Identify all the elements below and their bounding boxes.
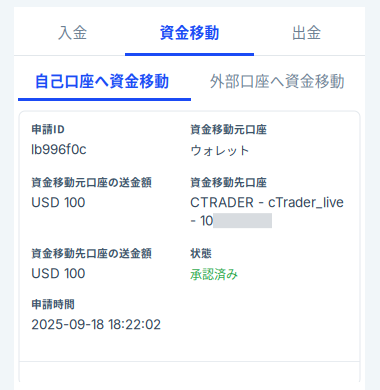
button[interactable]: 自己口座へ資金移動 bbox=[14, 56, 189, 101]
staticText: 自己口座へ資金移動 bbox=[34, 69, 169, 91]
button[interactable]: 資金移動 bbox=[131, 7, 248, 56]
staticText: 申請ID bbox=[31, 121, 65, 136]
button[interactable]: 外部口座へ資金移動 bbox=[189, 56, 365, 101]
staticText: ウォレット bbox=[190, 141, 250, 159]
staticText: 申請時間 bbox=[31, 296, 75, 311]
staticText: 2025-09-18 18:22:02 bbox=[31, 316, 161, 332]
staticText: 入金 bbox=[57, 21, 87, 42]
staticText: 出金 bbox=[291, 21, 321, 42]
staticText: 資金移動元口座の送金額 bbox=[31, 174, 152, 189]
button[interactable]: 出金 bbox=[248, 7, 365, 56]
staticText: 資金移動 bbox=[159, 21, 219, 42]
staticText: 資金移動元口座 bbox=[190, 121, 267, 136]
staticText: 状態 bbox=[190, 245, 212, 260]
staticText: 資金移動先口座の送金額 bbox=[31, 245, 152, 260]
staticText: 外部口座へ資金移動 bbox=[210, 69, 345, 91]
staticText: lb996f0c bbox=[31, 141, 87, 157]
staticText: USD 100 bbox=[31, 265, 85, 281]
staticText: USD 100 bbox=[31, 194, 85, 210]
staticText: CTRADER - cTrader_live bbox=[190, 194, 344, 210]
staticText: 資金移動先口座 bbox=[190, 174, 267, 189]
button[interactable]: 入金 bbox=[14, 7, 131, 56]
staticText: 承認済み bbox=[190, 265, 238, 283]
staticText: - 10 bbox=[190, 213, 213, 229]
